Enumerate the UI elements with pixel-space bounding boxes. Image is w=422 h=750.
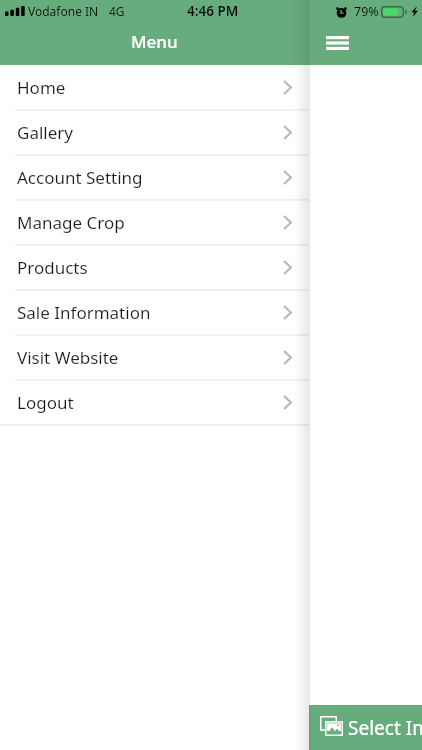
staticText: Products [17,256,88,279]
button[interactable]: Open navigation menu [319,27,355,59]
staticText: Manage Crop [17,211,125,234]
staticText: Sale Information [17,301,151,324]
staticText: Vodafone IN [28,3,99,19]
staticText: Visit Website [17,346,119,369]
staticText: Account Setting [17,166,143,189]
staticText: Home [17,76,66,99]
button[interactable]: Select Image [309,705,422,750]
button[interactable]: Visit Website [0,335,309,380]
button[interactable]: Logout [0,380,309,425]
staticText: 79% [354,3,379,20]
staticText: Menu [131,30,178,53]
staticText: Select Image [348,715,422,741]
button[interactable]: Manage Crop [0,200,309,245]
button[interactable]: Gallery [0,110,309,155]
button[interactable]: Home [0,65,309,110]
staticText: Gallery [17,121,73,144]
staticText: 4:46 PM [187,2,239,20]
staticText: Logout [17,391,74,414]
button[interactable]: Products [0,245,309,290]
staticText: 4G [109,3,125,19]
button[interactable]: Account Setting [0,155,309,200]
button[interactable]: Sale Information [0,290,309,335]
